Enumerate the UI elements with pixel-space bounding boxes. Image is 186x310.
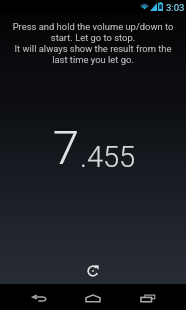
button[interactable]: Recent apps	[125, 284, 171, 310]
button[interactable]: Home	[70, 284, 116, 310]
button[interactable]: Back	[16, 284, 62, 310]
staticText: .455	[80, 140, 136, 174]
staticText: 7	[53, 120, 80, 175]
staticText: Press and hold the volume up/down to sta…	[10, 21, 176, 65]
button[interactable]: Reset	[80, 258, 106, 284]
staticText: 3:03	[166, 2, 185, 13]
